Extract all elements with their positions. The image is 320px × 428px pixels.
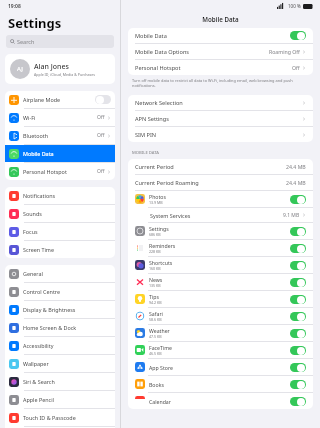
staticText: Weather	[149, 327, 170, 334]
button[interactable]: Sounds	[5, 205, 115, 222]
button[interactable]: Accessibility	[5, 337, 115, 354]
staticText: Home Screen & Dock	[23, 324, 111, 331]
button[interactable]: Control Centre	[5, 283, 115, 300]
staticText: App Store	[149, 364, 173, 371]
button[interactable]: Toggle	[290, 295, 306, 304]
button[interactable]: Bluetooth	[5, 127, 115, 144]
staticText: Wi-Fi	[23, 114, 97, 121]
button[interactable]: Toggle	[95, 95, 111, 104]
button[interactable]: Shortcuts	[128, 257, 313, 273]
button[interactable]: Display & Brightness	[5, 301, 115, 318]
staticText: 19:08	[8, 3, 21, 10]
button[interactable]: General	[5, 265, 115, 282]
staticText: Focus	[23, 228, 111, 235]
staticText: 24.4 MB	[286, 163, 306, 170]
button[interactable]: Toggle	[290, 31, 306, 40]
staticText: 135 KB	[149, 283, 161, 288]
staticText: Mobile Data	[23, 150, 111, 157]
button[interactable]: Photos	[128, 191, 313, 207]
button[interactable]: Toggle	[290, 312, 306, 321]
button[interactable]: Weather	[128, 325, 313, 341]
staticText: APN Settings	[135, 115, 302, 123]
staticText: Settings	[149, 225, 169, 232]
button[interactable]: Toggle	[290, 278, 306, 287]
button[interactable]: Focus	[5, 223, 115, 240]
button[interactable]: Notifications	[5, 187, 115, 204]
button[interactable]: Mobile Data Options	[128, 44, 313, 59]
staticText: Safari	[149, 310, 163, 317]
button[interactable]: News	[128, 274, 313, 290]
staticText: Apple Pencil	[23, 396, 111, 403]
button[interactable]: Toggle	[290, 380, 306, 389]
staticText: 13.9 MB	[149, 200, 163, 205]
button[interactable]: Toggle	[290, 261, 306, 270]
button[interactable]: Network Selection	[128, 95, 313, 110]
button[interactable]: Home Screen & Dock	[5, 319, 115, 336]
button[interactable]: Toggle	[290, 244, 306, 253]
button[interactable]: Settings	[128, 223, 313, 239]
staticText: 228 KB	[149, 249, 161, 254]
button[interactable]: Tips	[128, 291, 313, 307]
staticText: MOBILE DATA	[132, 150, 159, 156]
button[interactable]: System Services	[128, 208, 313, 222]
button[interactable]: Mobile Data	[128, 28, 313, 43]
staticText: Display & Brightness	[23, 306, 111, 313]
staticText: Mobile Data Options	[135, 48, 269, 56]
button[interactable]: Toggle	[290, 346, 306, 355]
button[interactable]: Personal Hotspot	[5, 163, 115, 180]
staticText: Personal Hotspot	[23, 168, 97, 175]
staticText: Bluetooth	[23, 132, 97, 139]
staticText: Shortcuts	[149, 259, 173, 266]
button[interactable]: Toggle	[290, 363, 306, 372]
staticText: 58.6 KB	[149, 317, 162, 322]
button[interactable]: Siri & Search	[5, 373, 115, 390]
staticText: Apple ID, iCloud, Media & Purchases	[34, 72, 96, 77]
button[interactable]: APN Settings	[128, 111, 313, 126]
staticText: 100 %	[288, 3, 301, 9]
button[interactable]: Toggle	[290, 227, 306, 236]
staticText: Current Period Roaming	[135, 179, 286, 187]
staticText: 160 KB	[149, 266, 161, 271]
staticText: 46.5 KB	[149, 351, 162, 356]
button[interactable]: Touch ID & Passcode	[5, 409, 115, 426]
button[interactable]: Reminders	[128, 240, 313, 256]
staticText: Current Period	[135, 163, 286, 171]
button[interactable]: Screen Time	[5, 241, 115, 258]
button[interactable]: AJ	[5, 54, 115, 84]
button[interactable]: Toggle	[290, 397, 306, 406]
button[interactable]: Calendar	[128, 393, 313, 409]
staticText: Off	[97, 132, 105, 139]
button[interactable]: Personal Hotspot	[128, 60, 313, 75]
button[interactable]: FaceTime	[128, 342, 313, 358]
button[interactable]: Current Period Roaming	[128, 175, 313, 190]
button[interactable]: Mobile Data	[5, 145, 115, 162]
button[interactable]: Toggle	[290, 195, 306, 204]
button[interactable]: Toggle	[290, 329, 306, 338]
staticText: 94.2 KB	[149, 300, 162, 305]
button[interactable]: Wi-Fi	[5, 109, 115, 126]
staticText: Touch ID & Passcode	[23, 414, 111, 421]
button[interactable]: Wallpaper	[5, 355, 115, 372]
staticText: Photos	[149, 193, 166, 200]
button[interactable]: Search	[6, 35, 114, 48]
button[interactable]: Safari	[128, 308, 313, 324]
button[interactable]: Apple Pencil	[5, 391, 115, 408]
staticText: FaceTime	[149, 344, 173, 351]
button[interactable]: App Store	[128, 359, 313, 375]
button[interactable]: SIM PIN	[128, 127, 313, 142]
staticText: 24.4 MB	[286, 179, 306, 186]
button[interactable]: Airplane Mode	[5, 91, 115, 108]
staticText: Screen Time	[23, 246, 111, 253]
staticText: Wallpaper	[23, 360, 111, 367]
staticText: Off	[97, 114, 105, 121]
staticText: AJ	[17, 65, 23, 73]
staticText: Alan Jones	[34, 62, 69, 72]
staticText: Accessibility	[23, 342, 111, 349]
staticText: 686 KB	[149, 232, 161, 237]
staticText: Personal Hotspot	[135, 64, 292, 72]
button[interactable]: Books	[128, 376, 313, 392]
staticText: Roaming Off	[269, 48, 300, 55]
button[interactable]: Current Period	[128, 159, 313, 174]
staticText: Airplane Mode	[23, 96, 95, 103]
